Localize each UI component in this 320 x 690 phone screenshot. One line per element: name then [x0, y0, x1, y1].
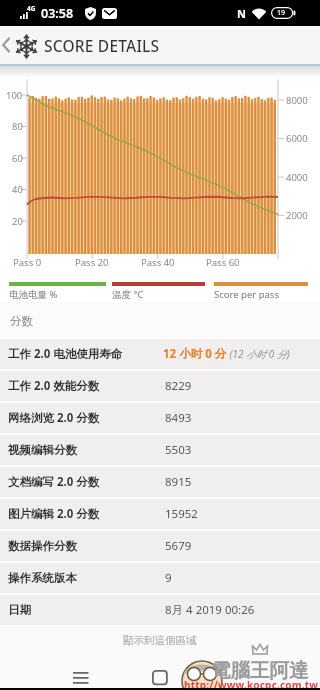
- staticText: 8月 4 2019 00:26: [165, 602, 255, 618]
- button[interactable]: 视频编辑分数: [0, 435, 320, 465]
- staticText: Pass 0: [13, 256, 42, 269]
- staticText: http://www.kocpc.com.tw: [184, 678, 319, 690]
- button[interactable]: [66, 665, 96, 690]
- button[interactable]: 数据操作分数: [0, 531, 320, 561]
- staticText: N: [237, 6, 246, 21]
- button[interactable]: [0, 30, 14, 60]
- staticText: 9: [165, 570, 172, 586]
- staticText: 100: [6, 89, 23, 102]
- staticText: 5503: [165, 442, 192, 458]
- staticText: 40: [12, 183, 23, 196]
- staticText: 8000: [286, 94, 308, 107]
- button[interactable]: 工作 2.0 电池使用寿命: [0, 339, 320, 369]
- staticText: 80: [12, 120, 23, 133]
- staticText: Score per pass: [214, 288, 279, 301]
- staticText: 顯示到這個區域: [123, 634, 197, 647]
- staticText: 分数: [10, 314, 33, 328]
- staticText: 19: [277, 8, 286, 18]
- staticText: 8493: [165, 410, 192, 426]
- staticText: (12 小时 0 分): [227, 347, 290, 361]
- staticText: Pass 20: [75, 256, 109, 269]
- button[interactable]: 操作系统版本: [0, 563, 320, 593]
- staticText: 03:58: [41, 5, 74, 22]
- staticText: 文档编写 2.0 分数: [8, 474, 100, 490]
- staticText: 60: [12, 152, 23, 165]
- button[interactable]: 图片编辑 2.0 分数: [0, 499, 320, 529]
- staticText: 6000: [286, 132, 308, 145]
- staticText: 工作 2.0 电池使用寿命: [8, 346, 123, 362]
- staticText: 4G: [27, 4, 36, 13]
- button[interactable]: 文档编写 2.0 分数: [0, 467, 320, 497]
- staticText: 操作系统版本: [8, 571, 77, 585]
- staticText: 4000: [286, 171, 308, 184]
- staticText: 20: [12, 215, 23, 228]
- staticText: 电池电量 %: [9, 288, 58, 301]
- staticText: 工作 2.0 效能分数: [8, 378, 100, 394]
- staticText: Pass 40: [141, 256, 175, 269]
- staticText: 图片编辑 2.0 分数: [8, 506, 100, 522]
- staticText: 8229: [165, 378, 192, 394]
- staticText: 温度 °C: [112, 288, 144, 301]
- staticText: 网络浏览 2.0 分数: [8, 410, 100, 426]
- staticText: 8915: [165, 474, 192, 490]
- staticText: 2000: [286, 209, 308, 222]
- staticText: SCORE DETAILS: [44, 35, 160, 56]
- staticText: 電腦王阿達: [211, 658, 309, 683]
- staticText: 15952: [165, 506, 198, 522]
- staticText: 日期: [8, 603, 31, 617]
- button[interactable]: 网络浏览 2.0 分数: [0, 403, 320, 433]
- button[interactable]: 工作 2.0 效能分数: [0, 371, 320, 401]
- staticText: 数据操作分数: [8, 539, 77, 553]
- staticText: Pass 60: [206, 256, 240, 269]
- button[interactable]: [146, 663, 174, 690]
- button[interactable]: 日期: [0, 595, 320, 625]
- staticText: 12 小时 0 分: [163, 346, 227, 362]
- staticText: 视频编辑分数: [8, 443, 77, 457]
- staticText: 5679: [165, 538, 192, 554]
